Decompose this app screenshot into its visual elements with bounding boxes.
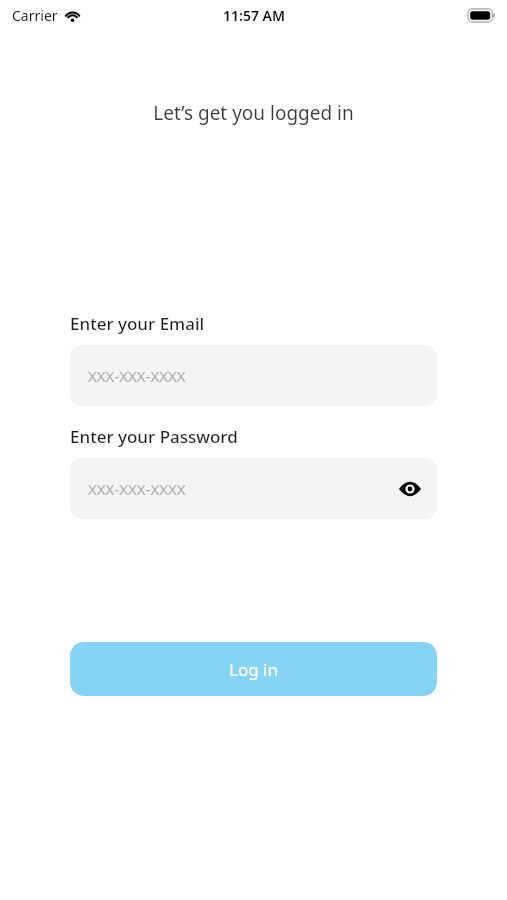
button[interactable]: Show password xyxy=(397,476,423,502)
button[interactable]: Log in xyxy=(70,642,437,696)
staticText: Enter your Password xyxy=(70,425,238,448)
staticText: 11:57 AM xyxy=(223,6,285,25)
button[interactable]: XXX-XXX-XXXX xyxy=(70,345,437,406)
staticText: Carrier xyxy=(12,6,58,25)
staticText: Log in xyxy=(229,658,278,681)
button[interactable]: XXX-XXX-XXXX xyxy=(70,458,437,519)
staticText: Enter your Email xyxy=(70,312,205,335)
staticText: XXX-XXX-XXXX xyxy=(88,479,186,499)
staticText: Let’s get you logged in xyxy=(0,100,507,126)
staticText: XXX-XXX-XXXX xyxy=(88,366,186,386)
